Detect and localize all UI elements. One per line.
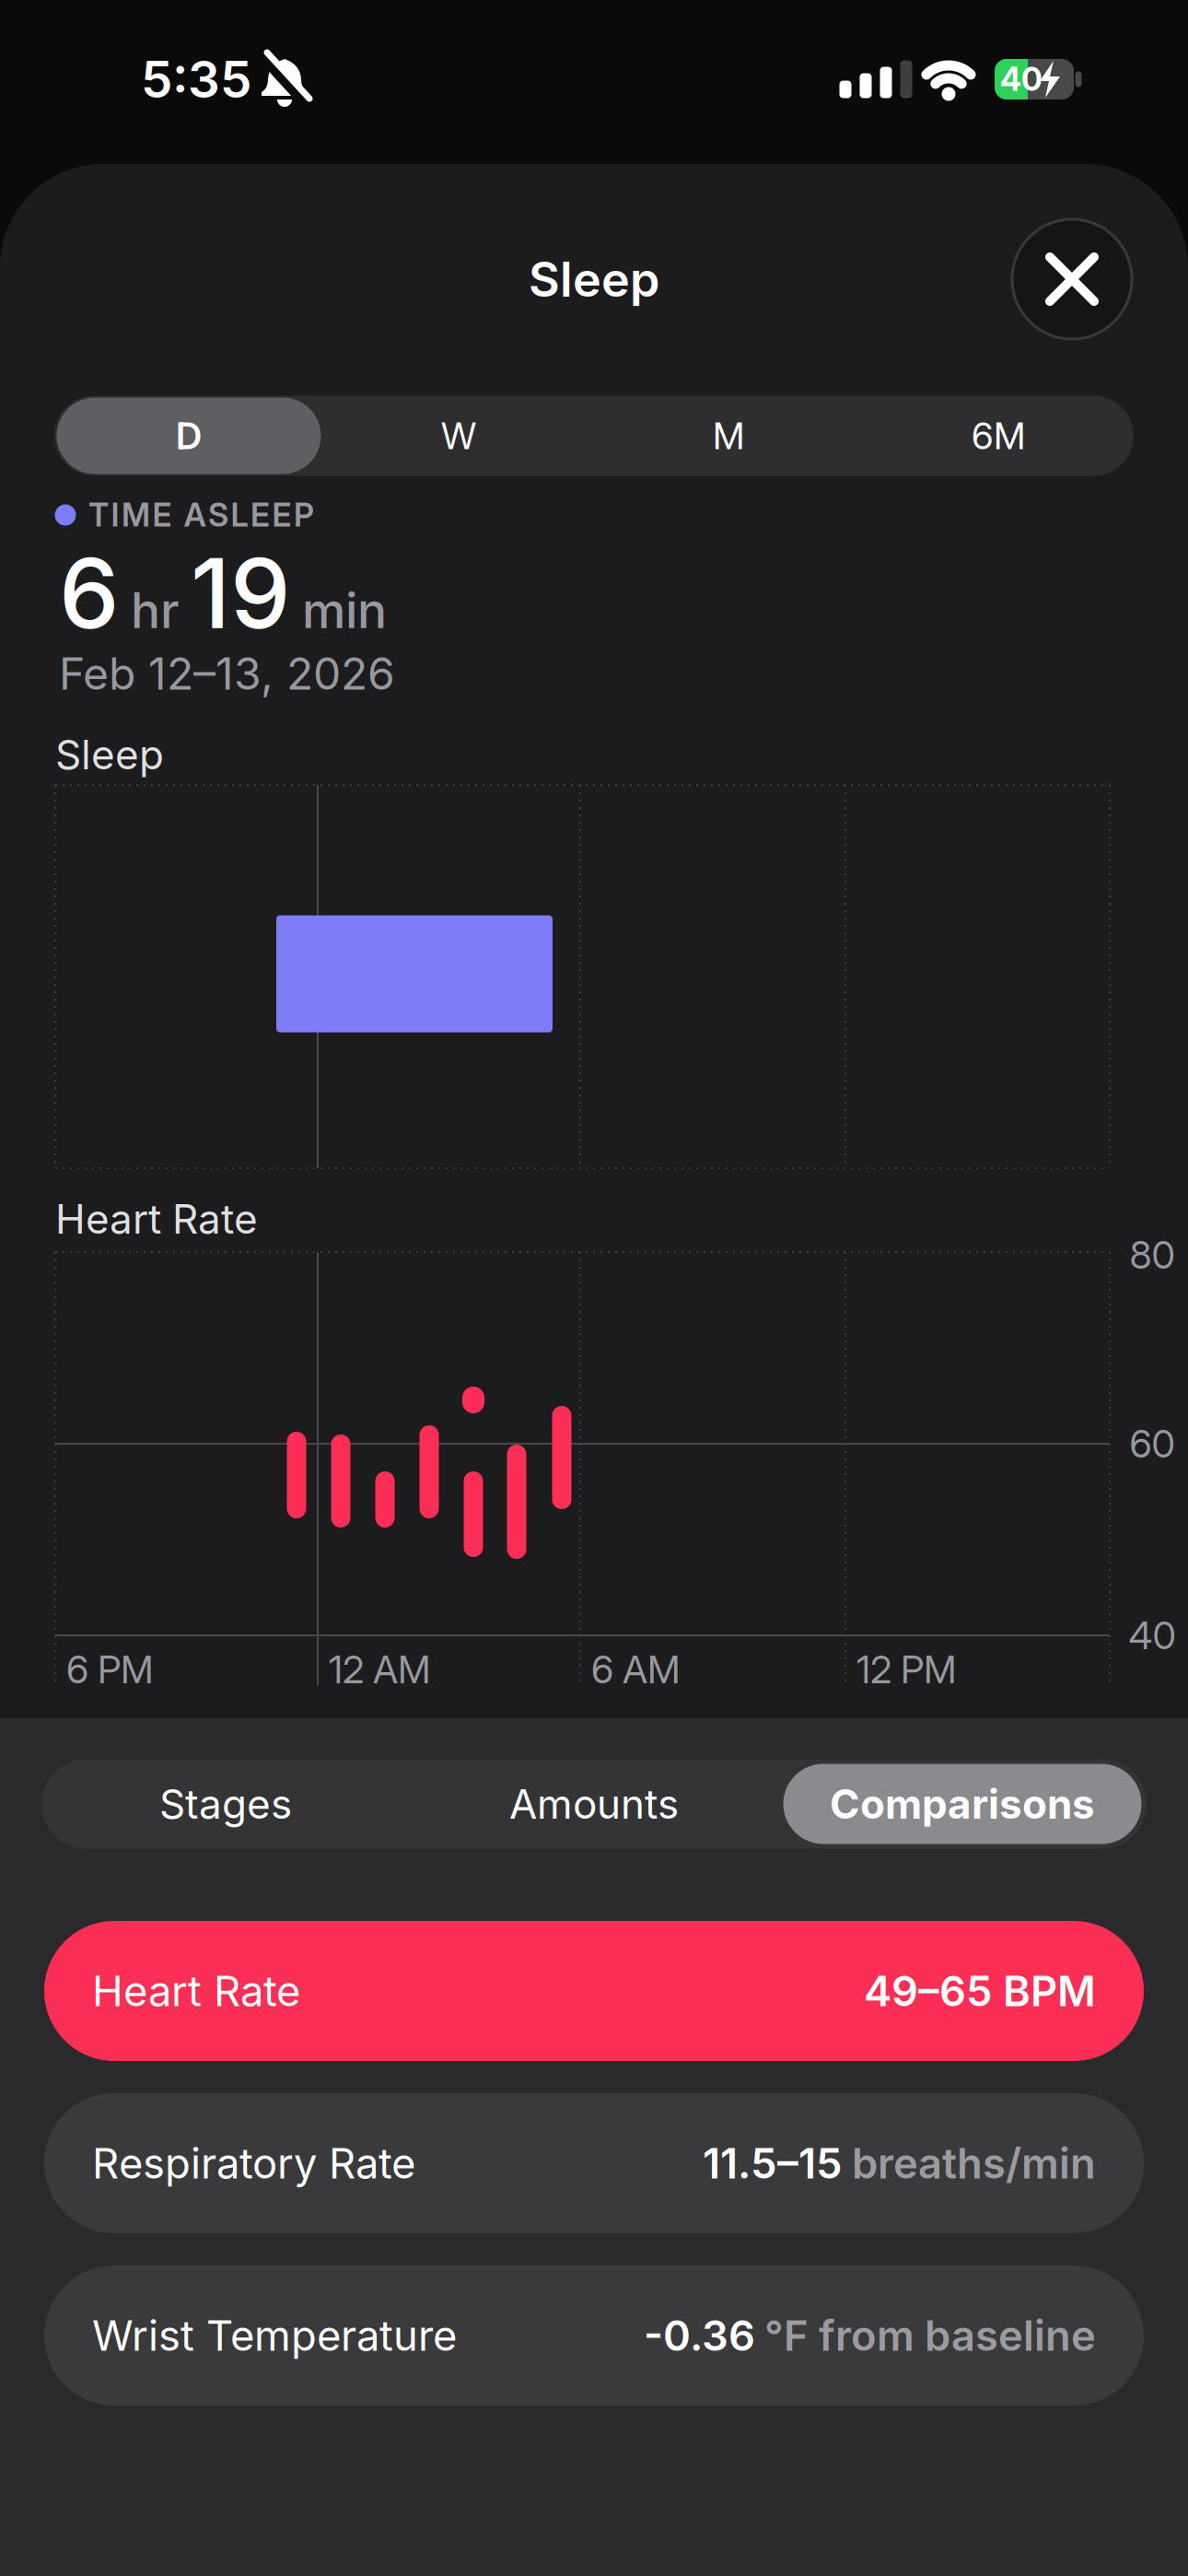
staticText: 40 <box>1000 60 1042 98</box>
button[interactable]: D <box>54 396 324 476</box>
staticText: M <box>713 414 744 458</box>
staticText: 5:35 <box>141 50 251 109</box>
staticText: 12 AM <box>329 1647 431 1692</box>
staticText: D <box>176 414 202 458</box>
button[interactable]: Heart Rate <box>44 1921 1144 2061</box>
staticText: Heart Rate <box>55 1195 258 1243</box>
button[interactable]: Amounts <box>410 1759 778 1849</box>
button[interactable]: W <box>324 396 594 476</box>
staticText: Stages <box>159 1780 292 1828</box>
staticText: 40 <box>1129 1613 1176 1658</box>
staticText: Sleep <box>55 731 164 778</box>
staticText: hr <box>131 581 180 639</box>
staticText: 6 PM <box>66 1647 154 1692</box>
staticText: Feb 12–13, 2026 <box>59 647 395 700</box>
staticText: Wrist Temperature <box>92 2311 457 2360</box>
staticText: 12 PM <box>856 1647 957 1692</box>
staticText: 6 <box>59 537 120 650</box>
staticText: TIME ASLEEP <box>88 496 314 534</box>
button[interactable]: Comparisons <box>779 1759 1146 1849</box>
button[interactable]: Respiratory Rate <box>44 2093 1144 2233</box>
staticText: 6 AM <box>591 1647 681 1692</box>
button[interactable]: M <box>594 396 863 476</box>
staticText: 60 <box>1130 1421 1175 1466</box>
staticText: 80 <box>1130 1232 1175 1277</box>
staticText: °F from baseline <box>764 2311 1096 2360</box>
staticText: Sleep <box>529 251 659 307</box>
staticText: 6M <box>972 414 1025 458</box>
button[interactable] <box>1012 219 1132 339</box>
staticText: 11.5–15 <box>703 2139 843 2188</box>
staticText: W <box>441 414 476 458</box>
staticText: min <box>302 581 387 639</box>
staticText: Heart Rate <box>92 1966 300 2016</box>
staticText: Respiratory Rate <box>92 2139 415 2188</box>
staticText: Amounts <box>509 1780 679 1828</box>
button[interactable]: Wrist Temperature <box>44 2266 1144 2406</box>
staticText: breaths/min <box>852 2139 1096 2188</box>
staticText: Comparisons <box>830 1780 1095 1828</box>
button[interactable]: 6M <box>863 396 1133 476</box>
staticText: -0.36 <box>644 2311 755 2360</box>
staticText: 19 <box>191 537 291 650</box>
staticText: 49–65 BPM <box>864 1966 1096 2016</box>
button[interactable]: Stages <box>42 1759 409 1849</box>
